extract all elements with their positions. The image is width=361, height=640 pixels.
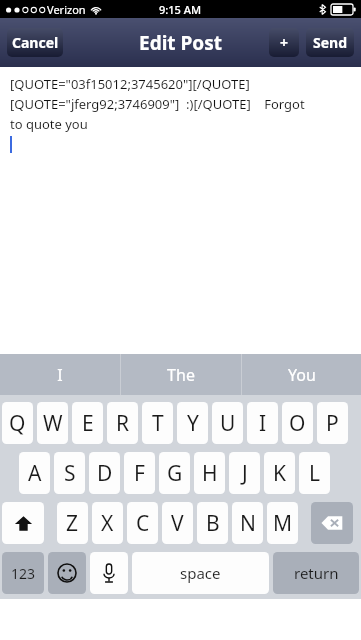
staticText: Q <box>9 409 26 438</box>
staticText: Verizon <box>47 2 86 17</box>
button[interactable]: I <box>0 354 120 395</box>
button[interactable]: R <box>107 402 138 444</box>
button[interactable]: U <box>212 402 243 444</box>
button[interactable]: K <box>264 452 295 494</box>
staticText: J <box>242 459 248 488</box>
button[interactable]: Shift <box>2 502 44 544</box>
staticText: The <box>167 364 195 386</box>
staticText: S <box>64 459 76 488</box>
button[interactable]: D <box>89 452 120 494</box>
button[interactable]: Emoji <box>48 552 86 594</box>
staticText: M <box>273 509 293 538</box>
staticText: [QUOTE="jferg92;3746909"] :)[/QUOTE] For… <box>10 95 305 113</box>
button[interactable]: You <box>242 354 361 395</box>
staticText: Y <box>187 409 199 438</box>
staticText: Edit Post <box>139 30 222 56</box>
button[interactable]: A <box>19 452 50 494</box>
staticText: L <box>309 459 321 488</box>
button[interactable]: O <box>282 402 313 444</box>
staticText: W <box>43 409 63 438</box>
button[interactable]: M <box>267 502 298 544</box>
staticText: [QUOTE="03f15012;3745620"][/QUOTE] <box>10 75 250 93</box>
button[interactable]: return <box>273 552 359 594</box>
staticText: G <box>167 459 183 488</box>
button[interactable]: Backspace <box>311 502 353 544</box>
button[interactable]: S <box>54 452 85 494</box>
staticText: I <box>259 409 267 438</box>
staticText: + <box>280 33 289 52</box>
staticText: U <box>220 409 236 438</box>
button[interactable]: T <box>142 402 173 444</box>
staticText: O <box>289 409 306 438</box>
button[interactable]: F <box>124 452 155 494</box>
staticText: P <box>326 409 339 438</box>
button[interactable]: W <box>37 402 68 444</box>
staticText: Z <box>66 509 79 538</box>
staticText: Cancel <box>12 33 59 52</box>
staticText: R <box>116 409 130 438</box>
staticText: N <box>240 509 256 538</box>
staticText: T <box>152 409 164 438</box>
staticText: V <box>171 509 184 538</box>
button[interactable]: Z <box>57 502 88 544</box>
staticText: X <box>101 509 114 538</box>
button[interactable]: Dictation <box>90 552 128 594</box>
staticText: F <box>134 459 145 488</box>
button[interactable]: Send <box>306 28 354 57</box>
staticText: C <box>136 509 150 538</box>
staticText: H <box>202 459 218 488</box>
staticText: to quote you <box>10 115 88 133</box>
button[interactable]: X <box>92 502 123 544</box>
button[interactable]: B <box>197 502 228 544</box>
button[interactable]: L <box>299 452 330 494</box>
button[interactable]: Q <box>2 402 33 444</box>
button[interactable]: E <box>72 402 103 444</box>
button[interactable]: The <box>121 354 241 395</box>
button[interactable]: Cancel <box>7 28 63 57</box>
staticText: You <box>288 364 316 386</box>
button[interactable]: 123 <box>2 552 44 594</box>
staticText: return <box>294 563 339 583</box>
button[interactable]: + <box>269 28 299 57</box>
staticText: E <box>82 409 94 438</box>
staticText: 9:15 AM <box>159 2 202 17</box>
staticText: 123 <box>11 564 36 583</box>
staticText: A <box>28 459 42 488</box>
button[interactable]: P <box>317 402 348 444</box>
staticText: D <box>97 459 113 488</box>
staticText: Send <box>313 33 348 52</box>
button[interactable]: J <box>229 452 260 494</box>
staticText: K <box>273 459 286 488</box>
button[interactable]: G <box>159 452 190 494</box>
staticText: B <box>206 509 220 538</box>
staticText: space <box>180 563 221 583</box>
button[interactable]: Y <box>177 402 208 444</box>
button[interactable]: I <box>247 402 278 444</box>
button[interactable]: H <box>194 452 225 494</box>
button[interactable]: space <box>132 552 269 594</box>
button[interactable]: V <box>162 502 193 544</box>
button[interactable]: N <box>232 502 263 544</box>
staticText: I <box>57 364 63 386</box>
button[interactable]: C <box>127 502 158 544</box>
